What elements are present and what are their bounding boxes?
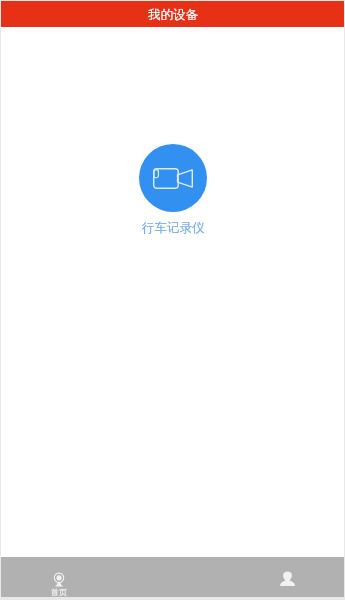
button[interactable]: 行车记录仪 <box>139 144 207 236</box>
button[interactable]: 首页 <box>1 557 116 597</box>
staticText: 行车记录仪 <box>142 220 205 236</box>
button[interactable]: Profile <box>230 557 344 597</box>
staticText: 首页 <box>51 587 67 597</box>
staticText: 我的设备 <box>148 7 198 23</box>
